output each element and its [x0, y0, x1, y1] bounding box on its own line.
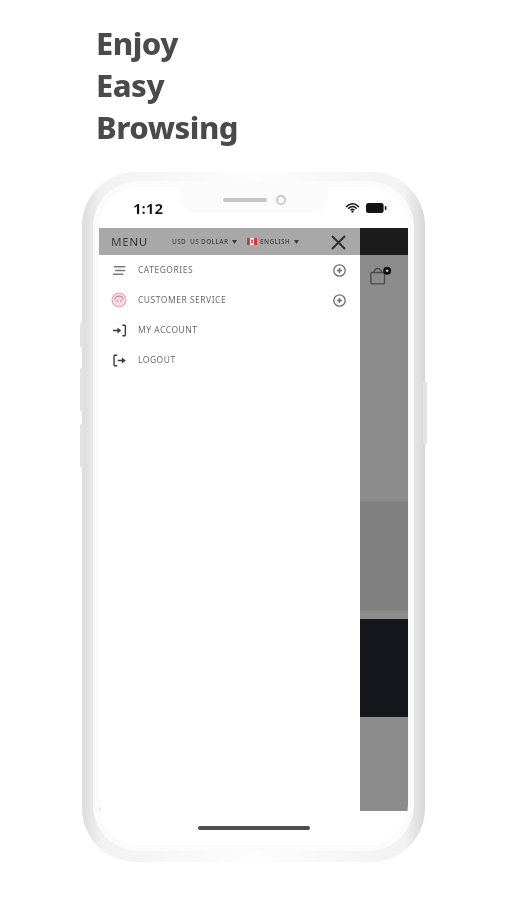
staticText: MENU [111, 234, 148, 250]
staticText: ENGLISH [260, 237, 291, 246]
staticText: Browsing [96, 106, 239, 148]
staticText: MY ACCOUNT [138, 324, 198, 336]
button[interactable]: ENGLISH [247, 237, 299, 246]
staticText: CUSTOMER SERVICE [138, 294, 227, 306]
button[interactable]: Expand CUSTOMER SERVICE [330, 291, 348, 309]
staticText: LOGOUT [138, 354, 176, 366]
button[interactable]: Cart [368, 263, 394, 289]
staticText: CATEGORIES [138, 264, 194, 276]
staticText: Enjoy [96, 22, 178, 64]
button[interactable]: MY ACCOUNT [99, 315, 360, 345]
staticText: 1:12 [133, 198, 163, 218]
staticText: USD US DOLLAR [172, 237, 229, 246]
button[interactable]: Expand CATEGORIES [330, 261, 348, 279]
button[interactable]: USD US DOLLAR [172, 237, 237, 246]
staticText: Easy [96, 64, 165, 106]
button[interactable]: LOGOUT [99, 345, 360, 375]
button[interactable]: CUSTOMER SERVICE [99, 285, 360, 315]
button[interactable]: Close menu [328, 232, 348, 252]
button[interactable]: CATEGORIES [99, 255, 360, 285]
